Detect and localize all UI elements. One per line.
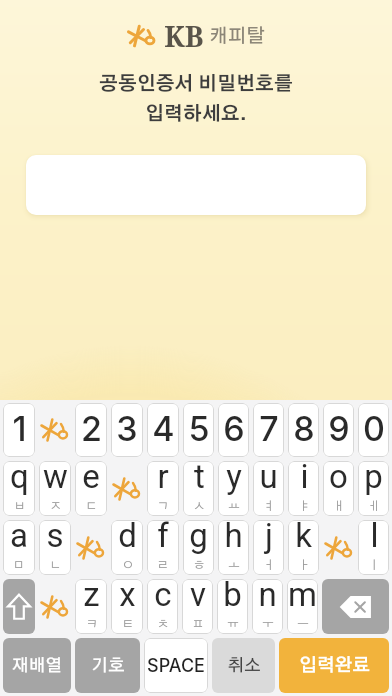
staticText: r xyxy=(157,461,169,496)
staticText: ㅗ xyxy=(228,559,240,571)
staticText: k xyxy=(295,520,312,555)
button[interactable]: g xyxy=(183,520,214,575)
staticText: ㅕ xyxy=(263,500,275,512)
button[interactable] xyxy=(39,579,71,634)
staticText: 9 xyxy=(328,408,350,449)
button[interactable]: 재배열 xyxy=(3,638,71,693)
button[interactable]: u xyxy=(253,461,284,516)
staticText: a xyxy=(10,520,28,555)
button[interactable] xyxy=(111,461,143,516)
staticText: h xyxy=(224,520,243,555)
staticText: l xyxy=(370,520,379,555)
button[interactable]: n xyxy=(252,579,283,634)
staticText: ㄷ xyxy=(85,500,97,512)
staticText: ㅠ xyxy=(227,618,239,630)
staticText: ㅏ xyxy=(298,559,310,571)
button[interactable]: i xyxy=(288,461,319,516)
staticText: g xyxy=(189,520,208,555)
staticText: 입력완료 xyxy=(299,657,370,675)
staticText: ㅈ xyxy=(50,500,62,512)
button[interactable]: x xyxy=(111,579,143,634)
button[interactable]: 기호 xyxy=(75,638,140,693)
button[interactable]: o xyxy=(323,461,354,516)
staticText: d xyxy=(118,520,137,555)
staticText: 6 xyxy=(223,408,245,449)
button[interactable] xyxy=(3,579,35,634)
staticText: ㅐ xyxy=(333,500,345,512)
button[interactable]: 7 xyxy=(253,403,284,457)
staticText: ㅣ xyxy=(368,559,380,571)
staticText: t xyxy=(194,461,205,496)
button[interactable]: p xyxy=(358,461,389,516)
button[interactable] xyxy=(322,579,389,634)
staticText: z xyxy=(83,579,100,614)
staticText: ㅊ xyxy=(157,618,169,630)
button[interactable] xyxy=(39,403,71,457)
staticText: ㅇ xyxy=(122,559,134,571)
button[interactable]: z xyxy=(75,579,107,634)
button[interactable]: 취소 xyxy=(212,638,275,693)
button[interactable]: 입력완료 xyxy=(279,638,389,693)
button[interactable]: a xyxy=(3,520,35,575)
button[interactable]: d xyxy=(111,520,143,575)
button[interactable]: c xyxy=(147,579,178,634)
button[interactable]: 2 xyxy=(75,403,107,457)
button[interactable]: t xyxy=(183,461,214,516)
button[interactable] xyxy=(75,520,107,575)
button[interactable]: 1 xyxy=(3,403,35,457)
button[interactable]: 9 xyxy=(323,403,354,457)
button[interactable]: 4 xyxy=(147,403,179,457)
button[interactable]: b xyxy=(217,579,248,634)
staticText: f xyxy=(157,520,169,555)
staticText: e xyxy=(82,461,100,496)
staticText: ㅍ xyxy=(192,618,204,630)
staticText: b xyxy=(223,579,242,614)
button[interactable] xyxy=(26,155,366,215)
button[interactable]: f xyxy=(147,520,179,575)
staticText: 0 xyxy=(363,408,385,449)
staticText: 취소 xyxy=(227,657,261,674)
button[interactable]: y xyxy=(218,461,249,516)
button[interactable]: SPACE xyxy=(144,638,208,693)
staticText: m xyxy=(288,579,317,614)
staticText: ㄱ xyxy=(157,500,169,512)
button[interactable] xyxy=(323,520,354,575)
staticText: ㅓ xyxy=(263,559,275,571)
staticText: ㅎ xyxy=(193,559,205,571)
button[interactable]: 0 xyxy=(358,403,389,457)
staticText: 캐피탈 xyxy=(209,27,265,46)
staticText: j xyxy=(265,520,273,555)
staticText: 8 xyxy=(293,408,315,449)
staticText: n xyxy=(258,579,277,614)
button[interactable]: l xyxy=(358,520,389,575)
button[interactable]: r xyxy=(147,461,179,516)
staticText: p xyxy=(364,461,383,496)
button[interactable]: v xyxy=(182,579,213,634)
staticText: ㅁ xyxy=(13,559,25,571)
button[interactable]: 3 xyxy=(111,403,143,457)
button[interactable]: e xyxy=(75,461,107,516)
staticText: 재배열 xyxy=(12,657,62,674)
button[interactable]: 8 xyxy=(288,403,319,457)
button[interactable]: j xyxy=(253,520,284,575)
staticText: ㄴ xyxy=(49,559,61,571)
staticText: o xyxy=(329,461,348,496)
button[interactable]: m xyxy=(287,579,318,634)
button[interactable]: q xyxy=(3,461,35,516)
staticText: 기호 xyxy=(91,657,125,674)
staticText: ㅡ xyxy=(297,618,309,630)
staticText: ㅌ xyxy=(122,618,134,630)
button[interactable]: 6 xyxy=(218,403,249,457)
button[interactable]: h xyxy=(218,520,249,575)
staticText: 7 xyxy=(259,408,279,449)
button[interactable]: w xyxy=(39,461,71,516)
staticText: u xyxy=(259,461,278,496)
button[interactable]: s xyxy=(39,520,71,575)
staticText: s xyxy=(46,520,64,555)
staticText: 2 xyxy=(81,408,102,449)
staticText: c xyxy=(154,579,172,614)
button[interactable]: 5 xyxy=(183,403,214,457)
staticText: 4 xyxy=(152,408,175,449)
staticText: y xyxy=(226,461,242,496)
button[interactable]: k xyxy=(288,520,319,575)
